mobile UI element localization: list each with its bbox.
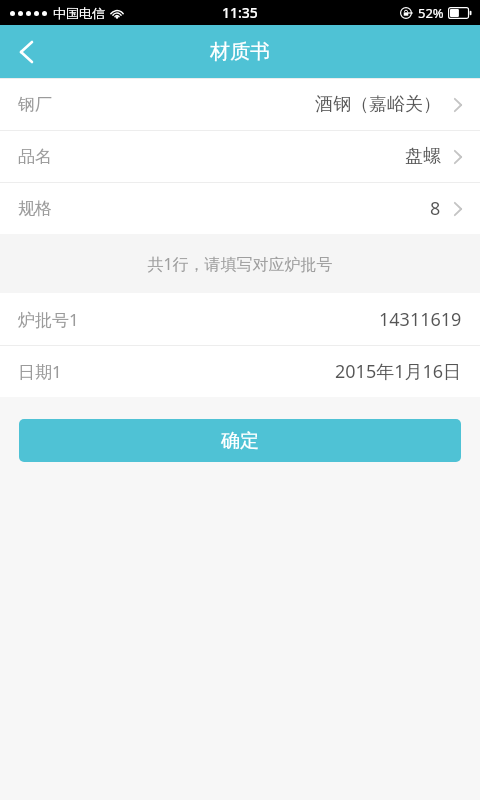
- staticText: 2015年1月16日: [335, 359, 462, 384]
- staticText: 中国电信: [53, 5, 105, 21]
- staticText: 材质书: [210, 39, 270, 64]
- staticText: 酒钢（嘉峪关）: [315, 93, 441, 116]
- staticText: 规格: [18, 198, 52, 219]
- button[interactable]: 钢厂: [0, 79, 480, 130]
- button[interactable]: 日期1: [0, 346, 480, 397]
- button[interactable]: Back: [0, 26, 52, 78]
- button[interactable]: 规格: [0, 183, 480, 234]
- staticText: 盘螺: [405, 145, 441, 168]
- button[interactable]: 品名: [0, 131, 480, 182]
- button[interactable]: 炉批号1: [0, 293, 480, 345]
- staticText: 日期1: [18, 360, 62, 383]
- staticText: 确定: [221, 429, 259, 453]
- button[interactable]: 确定: [19, 419, 461, 462]
- staticText: 钢厂: [18, 94, 52, 115]
- staticText: 8: [430, 196, 441, 221]
- staticText: 炉批号1: [18, 308, 79, 331]
- staticText: 品名: [18, 146, 52, 167]
- staticText: 52%: [418, 4, 444, 22]
- staticText: 14311619: [379, 307, 462, 332]
- staticText: 11:35: [222, 3, 258, 22]
- staticText: 共1行，请填写对应炉批号: [147, 253, 333, 275]
